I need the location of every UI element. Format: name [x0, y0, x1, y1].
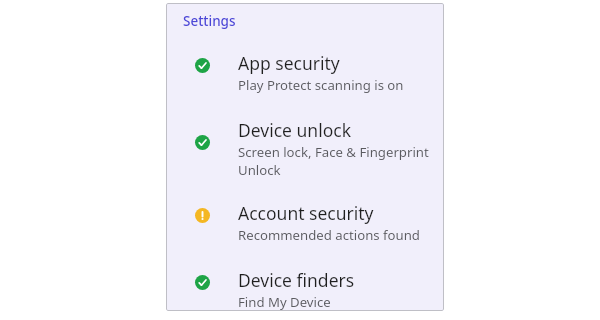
staticText: Recommended actions found — [238, 226, 420, 244]
staticText: Play Protect scanning is on — [238, 76, 404, 94]
other: Warning — [195, 208, 210, 223]
button[interactable]: Secure — [166, 118, 444, 179]
staticText: Settings — [183, 12, 236, 30]
staticText: Device finders — [238, 268, 355, 292]
button[interactable]: Warning — [166, 201, 444, 244]
other: Secure — [195, 58, 210, 73]
staticText: App security — [238, 51, 340, 75]
other: Secure — [195, 135, 210, 150]
staticText: Find My Device — [238, 293, 331, 311]
button[interactable]: Secure — [166, 268, 444, 311]
button[interactable]: Secure — [166, 51, 444, 94]
staticText: Device unlock — [238, 118, 351, 142]
staticText: Screen lock, Face & Fingerprint Unlock — [238, 143, 434, 179]
other: Secure — [195, 275, 210, 290]
staticText: Account security — [238, 201, 374, 225]
